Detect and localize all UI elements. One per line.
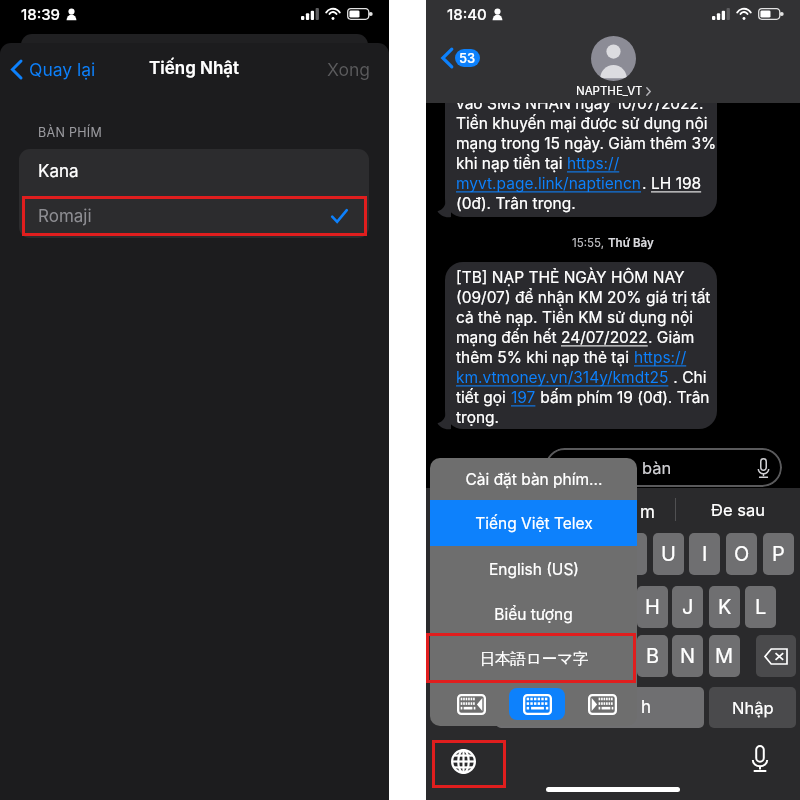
staticText: J: [682, 595, 694, 619]
button[interactable]: L: [745, 586, 776, 628]
button[interactable]: Backspace: [756, 635, 796, 677]
staticText: trọng.: [456, 408, 500, 427]
staticText: bàn: [642, 458, 672, 478]
staticText: 18:40: [447, 5, 487, 23]
staticText: tiết gọi: [456, 388, 511, 407]
button[interactable]: M: [709, 635, 740, 677]
staticText: https://: [634, 348, 687, 367]
staticText: myvt.page.link/naptiencn: [456, 174, 642, 193]
staticText: cả thẻ nạp. Tiền KM sử dụng nội: [456, 308, 693, 327]
staticText: K: [718, 595, 732, 619]
staticText: khi nạp tiền tại: [456, 154, 567, 173]
staticText: Đe sau: [711, 500, 765, 520]
staticText: 197: [511, 388, 536, 407]
button[interactable]: Cài đặt bàn phím...: [430, 458, 637, 500]
staticText: Romaji: [38, 206, 92, 227]
button[interactable]: Left split keyboard: [443, 688, 499, 720]
staticText: bấm phím 19 (0đ). Trân: [536, 388, 710, 407]
staticText: vào SMS NHẬN ngày 10/07/2022.: [456, 94, 704, 113]
button[interactable]: I: [689, 533, 720, 575]
staticText: Kana: [38, 161, 79, 182]
button[interactable]: H: [637, 586, 668, 628]
staticText: O: [734, 542, 750, 566]
staticText: 24/07/2022: [561, 328, 648, 347]
button[interactable]: U: [653, 533, 684, 575]
button[interactable]: Biểu tượng: [430, 593, 637, 636]
button[interactable]: 日本語ローマ字: [430, 636, 637, 682]
staticText: U: [661, 542, 676, 566]
staticText: I: [702, 542, 708, 566]
staticText: M: [715, 644, 734, 668]
staticText: Cài đặt bàn phím...: [465, 470, 603, 489]
staticText: mạng đến hết: [456, 328, 561, 347]
staticText: Thứ Bảy: [608, 236, 654, 250]
button[interactable]: Tiếng Việt Telex: [430, 500, 637, 546]
staticText: [TB] NẠP THẺ NGÀY HÔM NAY: [456, 268, 685, 287]
button[interactable]: Dictate: [746, 745, 773, 772]
staticText: .: [642, 174, 651, 193]
button[interactable]: Xong: [309, 53, 389, 86]
staticText: B: [646, 644, 660, 668]
button[interactable]: B: [637, 635, 668, 677]
staticText: Quay lại: [29, 59, 96, 80]
staticText: (0đ). Trân trọng.: [456, 194, 576, 213]
button[interactable]: K: [709, 586, 740, 628]
staticText: English (US): [489, 560, 579, 579]
button[interactable]: J: [672, 586, 703, 628]
button[interactable]: h: [496, 687, 704, 728]
staticText: Nhập: [732, 698, 774, 718]
button[interactable]: Right split keyboard: [574, 688, 630, 720]
button[interactable]: O: [726, 533, 757, 575]
staticText: 18:39: [21, 5, 61, 23]
staticText: (09/07) để nhận KM 20% giá trị tất: [456, 288, 711, 307]
staticText: Tiếng Việt Telex: [475, 514, 593, 533]
staticText: m: [640, 502, 655, 523]
staticText: Tiếng Nhật: [149, 58, 240, 79]
button[interactable]: NAPTHE_VT: [576, 36, 651, 98]
staticText: mạng trong 15 ngày. Giảm thêm 3%: [456, 134, 717, 153]
staticText: 15:55,: [572, 236, 608, 250]
staticText: NAPTHE_VT: [576, 84, 643, 98]
staticText: . Chi: [669, 368, 707, 387]
staticText: 日本語ローマ字: [479, 649, 589, 669]
staticText: https://: [567, 154, 620, 173]
staticText: Biểu tượng: [494, 605, 573, 624]
staticText: 53: [459, 50, 476, 66]
staticText: Tiền khuyến mại được sử dụng nội: [456, 114, 708, 133]
button[interactable]: Back, 53 unread: [438, 45, 483, 71]
button[interactable]: Kana: [19, 149, 369, 194]
button[interactable]: Nhập: [709, 687, 796, 728]
button[interactable]: Quay lại: [0, 53, 106, 86]
button[interactable]: P: [763, 533, 794, 575]
button[interactable]: Change keyboard: [448, 746, 479, 777]
staticText: H: [645, 595, 660, 619]
staticText: P: [772, 542, 785, 566]
staticText: h: [641, 697, 652, 718]
button[interactable]: N: [672, 635, 703, 677]
button[interactable]: [616, 533, 647, 575]
button[interactable]: Full keyboard: [509, 688, 565, 720]
staticText: LH 198: [651, 174, 702, 193]
staticText: L: [755, 595, 767, 619]
staticText: thêm 5% khi nạp thẻ tại: [456, 348, 634, 367]
staticText: . Giảm: [648, 328, 695, 347]
button[interactable]: bàn: [545, 448, 782, 487]
staticText: km.vtmoney.vn/314y/kmdt25: [456, 368, 669, 387]
button[interactable]: Romaji: [19, 194, 369, 238]
button[interactable]: English (US): [430, 546, 637, 593]
staticText: BÀN PHÍM: [38, 125, 103, 140]
staticText: N: [680, 644, 696, 668]
